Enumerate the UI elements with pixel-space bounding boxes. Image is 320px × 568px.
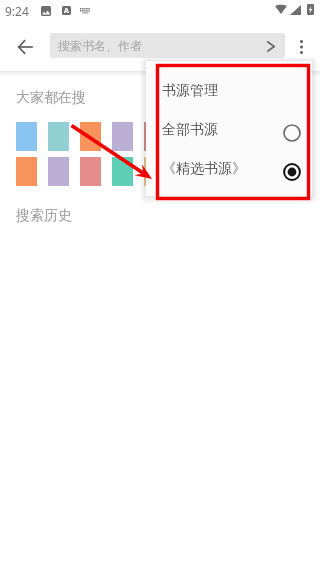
button[interactable]: [144, 122, 165, 151]
staticText: 《精选书源》: [162, 160, 246, 178]
button[interactable]: [80, 122, 101, 151]
button[interactable]: 全部书源: [146, 110, 312, 149]
button[interactable]: 搜索书名、作者: [50, 33, 285, 58]
staticText: 大家都在搜: [16, 89, 86, 107]
staticText: 搜索历史: [16, 207, 72, 225]
button[interactable]: 《精选书源》: [146, 149, 312, 188]
staticText: 书源管理: [162, 82, 218, 100]
button[interactable]: [112, 122, 133, 151]
staticText: A: [64, 6, 69, 15]
button[interactable]: 书源管理: [146, 71, 312, 110]
button[interactable]: More options: [288, 30, 314, 64]
staticText: 全部书源: [162, 121, 218, 139]
button[interactable]: [144, 157, 165, 186]
button[interactable]: Back: [9, 31, 41, 63]
staticText: 搜索书名、作者: [58, 38, 142, 53]
staticText: 9:24: [5, 3, 29, 19]
button[interactable]: [112, 157, 133, 186]
